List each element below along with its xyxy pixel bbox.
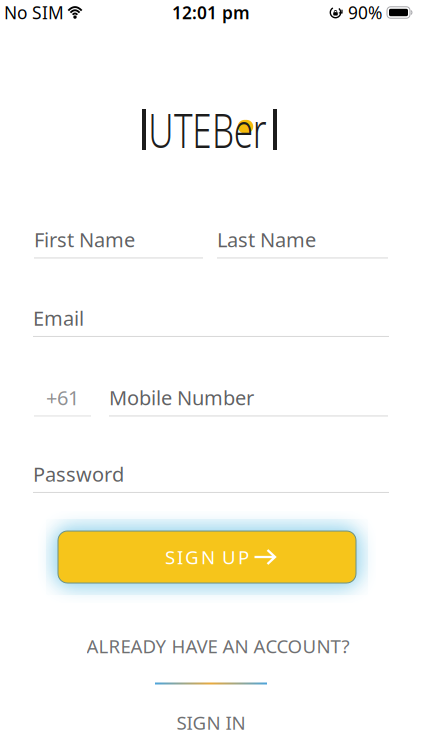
staticText: +61 [46,384,79,411]
staticText: ALREADY HAVE AN ACCOUNT? [86,634,349,658]
button[interactable]: SIGN IN [161,708,261,736]
staticText: e [243,98,269,161]
button[interactable]: Mobile Number [109,387,388,416]
staticText: First Name [34,226,135,253]
staticText: UTEB [126,98,243,161]
staticText: Email [33,305,84,331]
button[interactable]: S I G N U P [58,531,356,583]
staticText: SIGN IN [176,710,245,735]
staticText: 12:01 pm [172,1,250,24]
button[interactable]: Last Name [217,229,388,258]
button[interactable]: Password [33,463,389,493]
staticText: S I G N U P [165,545,249,569]
staticText: Mobile Number [109,384,254,411]
staticText: 90% [348,1,382,24]
staticText: r [269,98,288,161]
button[interactable]: Email [33,307,389,337]
button[interactable]: +61 [34,387,91,416]
staticText: Password [33,461,124,487]
staticText: No SIM [4,1,64,24]
button[interactable]: First Name [34,229,203,258]
staticText: Last Name [217,226,316,253]
